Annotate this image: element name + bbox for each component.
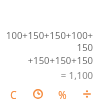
button[interactable]: Clear <box>2 88 24 100</box>
button[interactable]: History <box>27 88 49 100</box>
staticText: = 1,100 <box>60 69 93 82</box>
staticText: % <box>58 88 67 100</box>
staticText: +150+150+150 <box>27 54 93 67</box>
staticText: C <box>10 88 17 100</box>
staticText: 100+150+150+100+150 <box>6 29 93 53</box>
button[interactable]: Divide <box>76 88 98 100</box>
button[interactable]: Percent <box>51 88 73 100</box>
